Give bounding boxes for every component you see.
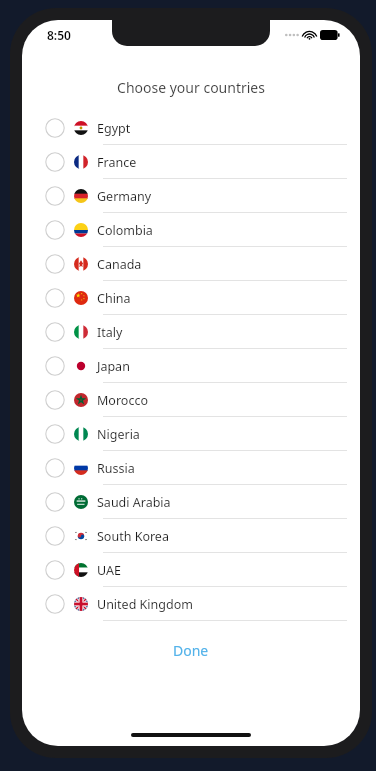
staticText: UAE xyxy=(97,562,121,579)
button[interactable]: Saudi Arabia xyxy=(22,485,360,519)
button[interactable]: Colombia xyxy=(22,213,360,247)
button[interactable]: Nigeria xyxy=(22,417,360,451)
button[interactable]: South Korea xyxy=(22,519,360,553)
button[interactable]: China xyxy=(22,281,360,315)
staticText: France xyxy=(97,154,137,171)
staticText: Egypt xyxy=(97,120,131,137)
staticText: Choose your countries xyxy=(22,78,360,97)
button[interactable]: Italy xyxy=(22,315,360,349)
staticText: Canada xyxy=(97,256,142,273)
button[interactable]: Canada xyxy=(22,247,360,281)
button[interactable]: Japan xyxy=(22,349,360,383)
staticText: Japan xyxy=(97,358,130,375)
staticText: China xyxy=(97,290,131,307)
staticText: Done xyxy=(173,641,209,660)
staticText: Colombia xyxy=(97,222,153,239)
button[interactable]: Russia xyxy=(22,451,360,485)
staticText: Nigeria xyxy=(97,426,140,443)
staticText: 8:50 xyxy=(47,27,71,43)
button[interactable]: United Kingdom xyxy=(22,587,360,621)
button[interactable]: Done xyxy=(22,638,360,662)
staticText: Italy xyxy=(97,324,123,341)
other: Home indicator xyxy=(131,733,251,737)
staticText: Germany xyxy=(97,188,152,205)
button[interactable]: Germany xyxy=(22,179,360,213)
button[interactable]: France xyxy=(22,145,360,179)
button[interactable]: Egypt xyxy=(22,111,360,145)
staticText: South Korea xyxy=(97,528,169,545)
staticText: Morocco xyxy=(97,392,148,409)
button[interactable]: Morocco xyxy=(22,383,360,417)
staticText: Saudi Arabia xyxy=(97,494,171,511)
button[interactable]: UAE xyxy=(22,553,360,587)
staticText: Russia xyxy=(97,460,135,477)
staticText: United Kingdom xyxy=(97,596,193,613)
